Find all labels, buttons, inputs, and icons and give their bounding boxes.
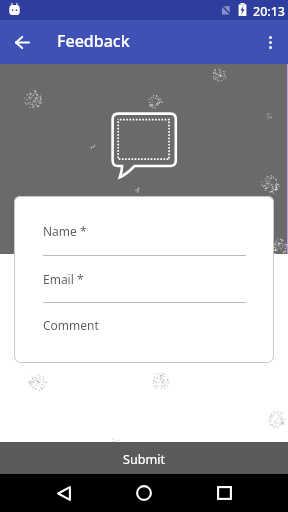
staticText: 20:13 xyxy=(253,3,286,20)
button[interactable]: Submit xyxy=(0,442,288,474)
button[interactable]: Back xyxy=(44,474,84,512)
staticText: Comment xyxy=(43,317,99,333)
staticText: Email * xyxy=(43,271,84,287)
button[interactable]: Home xyxy=(124,474,164,512)
button[interactable]: Navigate up xyxy=(0,20,44,64)
staticText: Submit xyxy=(123,451,166,468)
button[interactable]: Email * xyxy=(43,271,246,303)
staticText: Feedback xyxy=(57,30,130,52)
button[interactable]: Recent apps xyxy=(204,474,244,512)
button[interactable]: More options xyxy=(252,24,288,60)
staticText: Name * xyxy=(43,223,87,239)
button[interactable]: Name * xyxy=(43,223,246,256)
